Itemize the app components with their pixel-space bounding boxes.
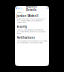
staticText: PROFILE	[17, 12, 23, 13]
button[interactable]: Edit	[39, 6, 49, 10]
button[interactable]: Back	[15, 6, 24, 10]
staticText: Jordan Mitchell	[17, 14, 39, 18]
staticText: Account Details	[26, 5, 37, 12]
staticText: Edit	[46, 7, 48, 9]
staticText: Security	[17, 25, 27, 28]
staticText: Two factor authentication is enabled for…	[17, 29, 46, 34]
staticText: Back	[18, 7, 22, 9]
staticText: Choose how you hear from us across email…	[17, 40, 47, 43]
staticText: Notifications	[17, 36, 35, 39]
staticText: Member since March 2021. Manage your per…	[17, 18, 46, 23]
